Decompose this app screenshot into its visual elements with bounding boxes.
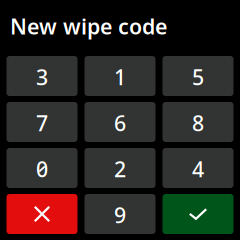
staticText: 1 [114, 63, 126, 91]
staticText: 6 [114, 109, 126, 137]
button[interactable]: 7 [6, 102, 77, 142]
staticText: 3 [36, 63, 48, 91]
button[interactable]: 5 [162, 56, 233, 96]
staticText: 5 [192, 63, 204, 91]
staticText: New wipe code [10, 12, 167, 40]
staticText: 8 [192, 109, 204, 137]
button[interactable]: 4 [162, 148, 233, 188]
button[interactable]: 1 [84, 56, 155, 96]
staticText: 4 [192, 155, 204, 183]
staticText: 7 [36, 109, 48, 137]
button[interactable]: 0 [6, 148, 77, 188]
button[interactable]: 2 [84, 148, 155, 188]
button[interactable]: 9 [84, 194, 155, 234]
button[interactable]: Cancel [6, 194, 77, 234]
button[interactable]: 3 [6, 56, 77, 96]
button[interactable]: Confirm [162, 194, 233, 234]
staticText: 0 [36, 155, 48, 183]
button[interactable]: 6 [84, 102, 155, 142]
staticText: 2 [114, 155, 126, 183]
staticText: 9 [114, 201, 126, 229]
button[interactable]: 8 [162, 102, 233, 142]
